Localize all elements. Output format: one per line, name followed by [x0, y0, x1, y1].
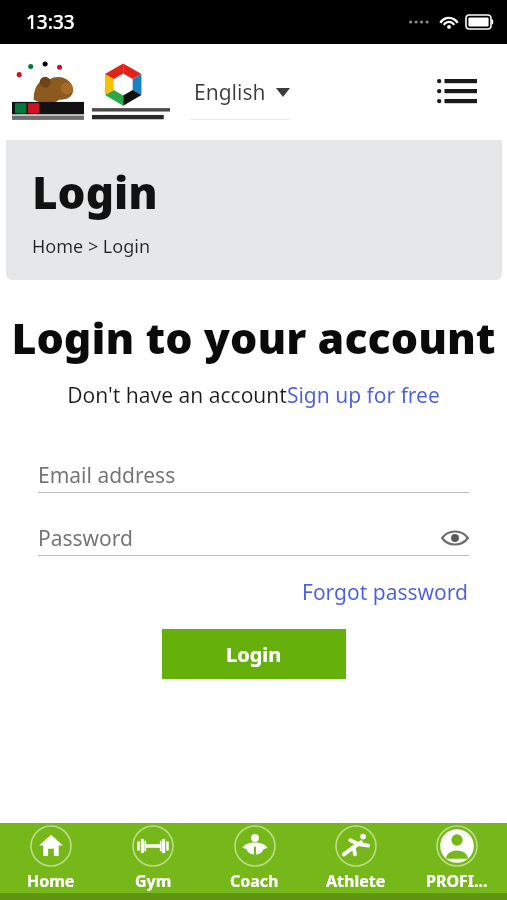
staticText: Password: [38, 524, 133, 553]
button[interactable]: Email address: [38, 458, 469, 493]
button[interactable]: Password: [38, 521, 469, 556]
staticText: Athlete: [326, 870, 386, 892]
staticText: PROFI...: [426, 870, 488, 892]
button[interactable]: Athlete: [305, 823, 406, 893]
staticText: Home > Login: [32, 234, 151, 259]
other: Show password: [441, 529, 469, 547]
staticText: Email address: [38, 461, 176, 490]
staticText: Login: [32, 162, 158, 222]
button[interactable]: Don't have an accountSign up for free: [0, 381, 507, 410]
staticText: 13:33: [26, 9, 75, 35]
staticText: Gym: [135, 870, 172, 892]
staticText: Coach: [230, 870, 279, 892]
button[interactable]: Menu: [429, 71, 485, 113]
button[interactable]: Login: [162, 629, 346, 679]
button[interactable]: Coach: [204, 823, 305, 893]
button[interactable]: Forgot password: [302, 578, 507, 607]
button[interactable]: Home: [0, 823, 102, 893]
staticText: English: [194, 78, 266, 107]
staticText: Home: [27, 870, 75, 892]
staticText: Login: [226, 641, 282, 668]
button[interactable]: English: [190, 72, 294, 113]
button[interactable]: PROFI...: [406, 823, 507, 893]
staticText: Login to your account: [10, 308, 497, 367]
button[interactable]: Gym: [102, 823, 204, 893]
